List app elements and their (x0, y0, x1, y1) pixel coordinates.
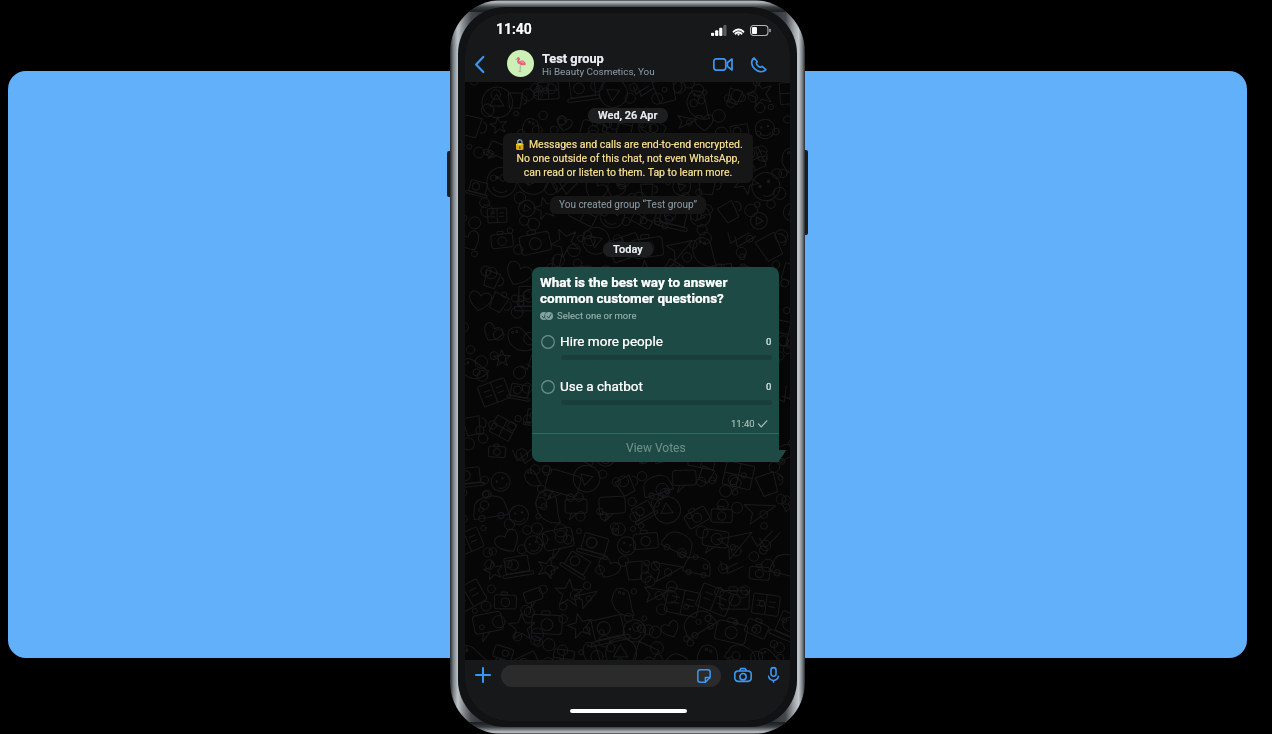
staticText: 11:40 (731, 418, 755, 429)
staticText: Use a chatbot (560, 378, 643, 394)
button[interactable]: Back (465, 47, 494, 82)
staticText: Select one or more (557, 310, 637, 321)
button[interactable]: Voice message (761, 662, 785, 688)
staticText: Test group (542, 51, 604, 66)
staticText: Wed, 26 Apr (598, 109, 658, 122)
staticText: 0 (766, 381, 772, 392)
button[interactable] (532, 267, 779, 462)
button[interactable]: Test group (507, 47, 655, 82)
button[interactable]: Camera (729, 663, 757, 687)
button[interactable]: Voice call (740, 48, 776, 83)
staticText: Hire more people (560, 333, 663, 349)
button[interactable]: Attach (470, 662, 496, 688)
staticText: You created group “Test group” (559, 199, 697, 211)
button[interactable]: View Votes (532, 434, 779, 462)
staticText: View Votes (626, 441, 686, 455)
staticText: 🔒 Messages and calls are end-to-end encr… (511, 138, 745, 178)
staticText: 0 (766, 336, 772, 347)
button[interactable] (501, 665, 721, 687)
staticText: 11:40 (496, 21, 532, 37)
staticText: What is the best way to answer common cu… (540, 274, 768, 306)
staticText: Today (613, 243, 643, 256)
button[interactable]: Video call (703, 47, 743, 82)
button[interactable]: 🔒 Messages and calls are end-to-end encr… (503, 133, 753, 183)
staticText: Hi Beauty Cosmetics, You (542, 66, 655, 78)
